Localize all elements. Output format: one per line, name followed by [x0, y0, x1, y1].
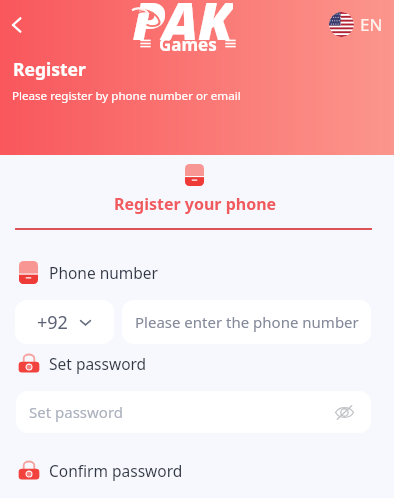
staticText: Phone number [49, 262, 159, 283]
button[interactable]: Language EN [329, 12, 383, 37]
staticText: PAK [132, 0, 233, 40]
staticText: EN [360, 13, 383, 36]
staticText: Set password [29, 402, 124, 422]
button[interactable]: Back [0, 9, 32, 41]
button[interactable]: Set password [16, 391, 371, 433]
staticText: Please enter the phone number [135, 312, 359, 332]
button[interactable]: Please enter the phone number [122, 300, 371, 344]
staticText: Please register by phone number or email [12, 88, 241, 104]
staticText: Confirm password [49, 460, 183, 481]
staticText: Set password [49, 353, 147, 374]
staticText: +92 [37, 310, 68, 335]
staticText: Register your phone [114, 193, 277, 215]
staticText: Register [13, 57, 86, 81]
button[interactable]: Country code +92 [15, 300, 114, 344]
button[interactable]: Show password [331, 399, 357, 425]
staticText: Games [159, 33, 217, 56]
